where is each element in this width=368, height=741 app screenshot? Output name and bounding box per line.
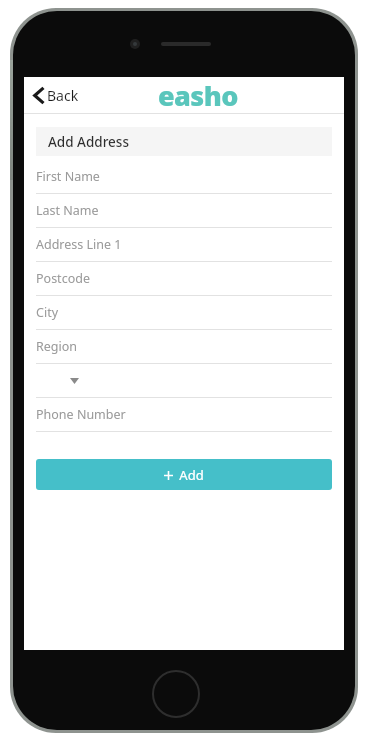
staticText: Last Name bbox=[36, 202, 99, 219]
button[interactable]: easho home bbox=[158, 77, 238, 113]
button[interactable]: Phone Number bbox=[24, 398, 344, 432]
staticText: Postcode bbox=[36, 270, 90, 287]
button[interactable]: Add bbox=[36, 459, 332, 490]
button[interactable]: City bbox=[24, 296, 344, 330]
staticText: City bbox=[36, 304, 59, 321]
staticText: First Name bbox=[36, 168, 100, 185]
button[interactable]: Add Address bbox=[36, 127, 332, 156]
button[interactable]: Back bbox=[31, 82, 82, 109]
staticText: Add Address bbox=[48, 133, 129, 151]
staticText: Address Line 1 bbox=[36, 236, 122, 253]
staticText: Region bbox=[36, 338, 78, 355]
staticText: easho bbox=[158, 77, 238, 113]
button[interactable]: Postcode bbox=[24, 262, 344, 296]
button[interactable]: Last Name bbox=[24, 194, 344, 228]
button[interactable]: Select country bbox=[24, 364, 344, 398]
staticText: Back bbox=[47, 86, 79, 105]
button[interactable]: Region bbox=[24, 330, 344, 364]
staticText: Phone Number bbox=[36, 406, 126, 423]
staticText: Add bbox=[179, 466, 204, 484]
button[interactable]: First Name bbox=[24, 160, 344, 194]
button[interactable]: Address Line 1 bbox=[24, 228, 344, 262]
